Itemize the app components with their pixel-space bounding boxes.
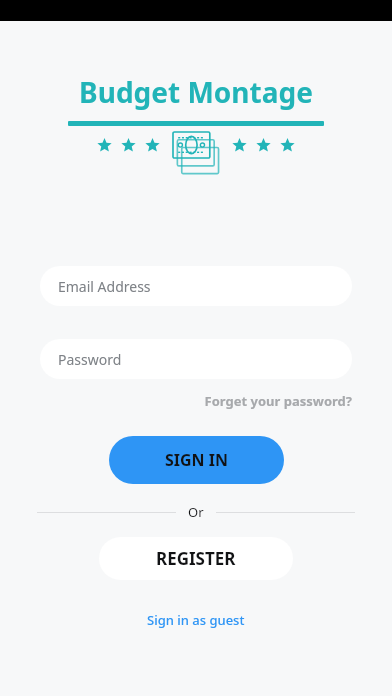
staticText: Password <box>58 350 122 369</box>
staticText: Or <box>188 503 204 521</box>
button[interactable]: Sign in as guest <box>141 605 251 635</box>
button[interactable]: Forget your password? <box>40 392 352 410</box>
staticText: Email Address <box>58 277 151 296</box>
button[interactable]: Email Address <box>40 266 352 306</box>
button[interactable]: Password <box>40 339 352 379</box>
staticText: SIGN IN <box>165 449 229 471</box>
button[interactable]: SIGN IN <box>109 436 284 484</box>
staticText: Budget Montage <box>79 73 313 111</box>
button[interactable]: REGISTER <box>99 537 293 580</box>
staticText: REGISTER <box>156 547 236 570</box>
other: Money <box>173 132 219 174</box>
staticText: Sign in as guest <box>147 611 245 629</box>
staticText: Forget your password? <box>40 392 352 410</box>
